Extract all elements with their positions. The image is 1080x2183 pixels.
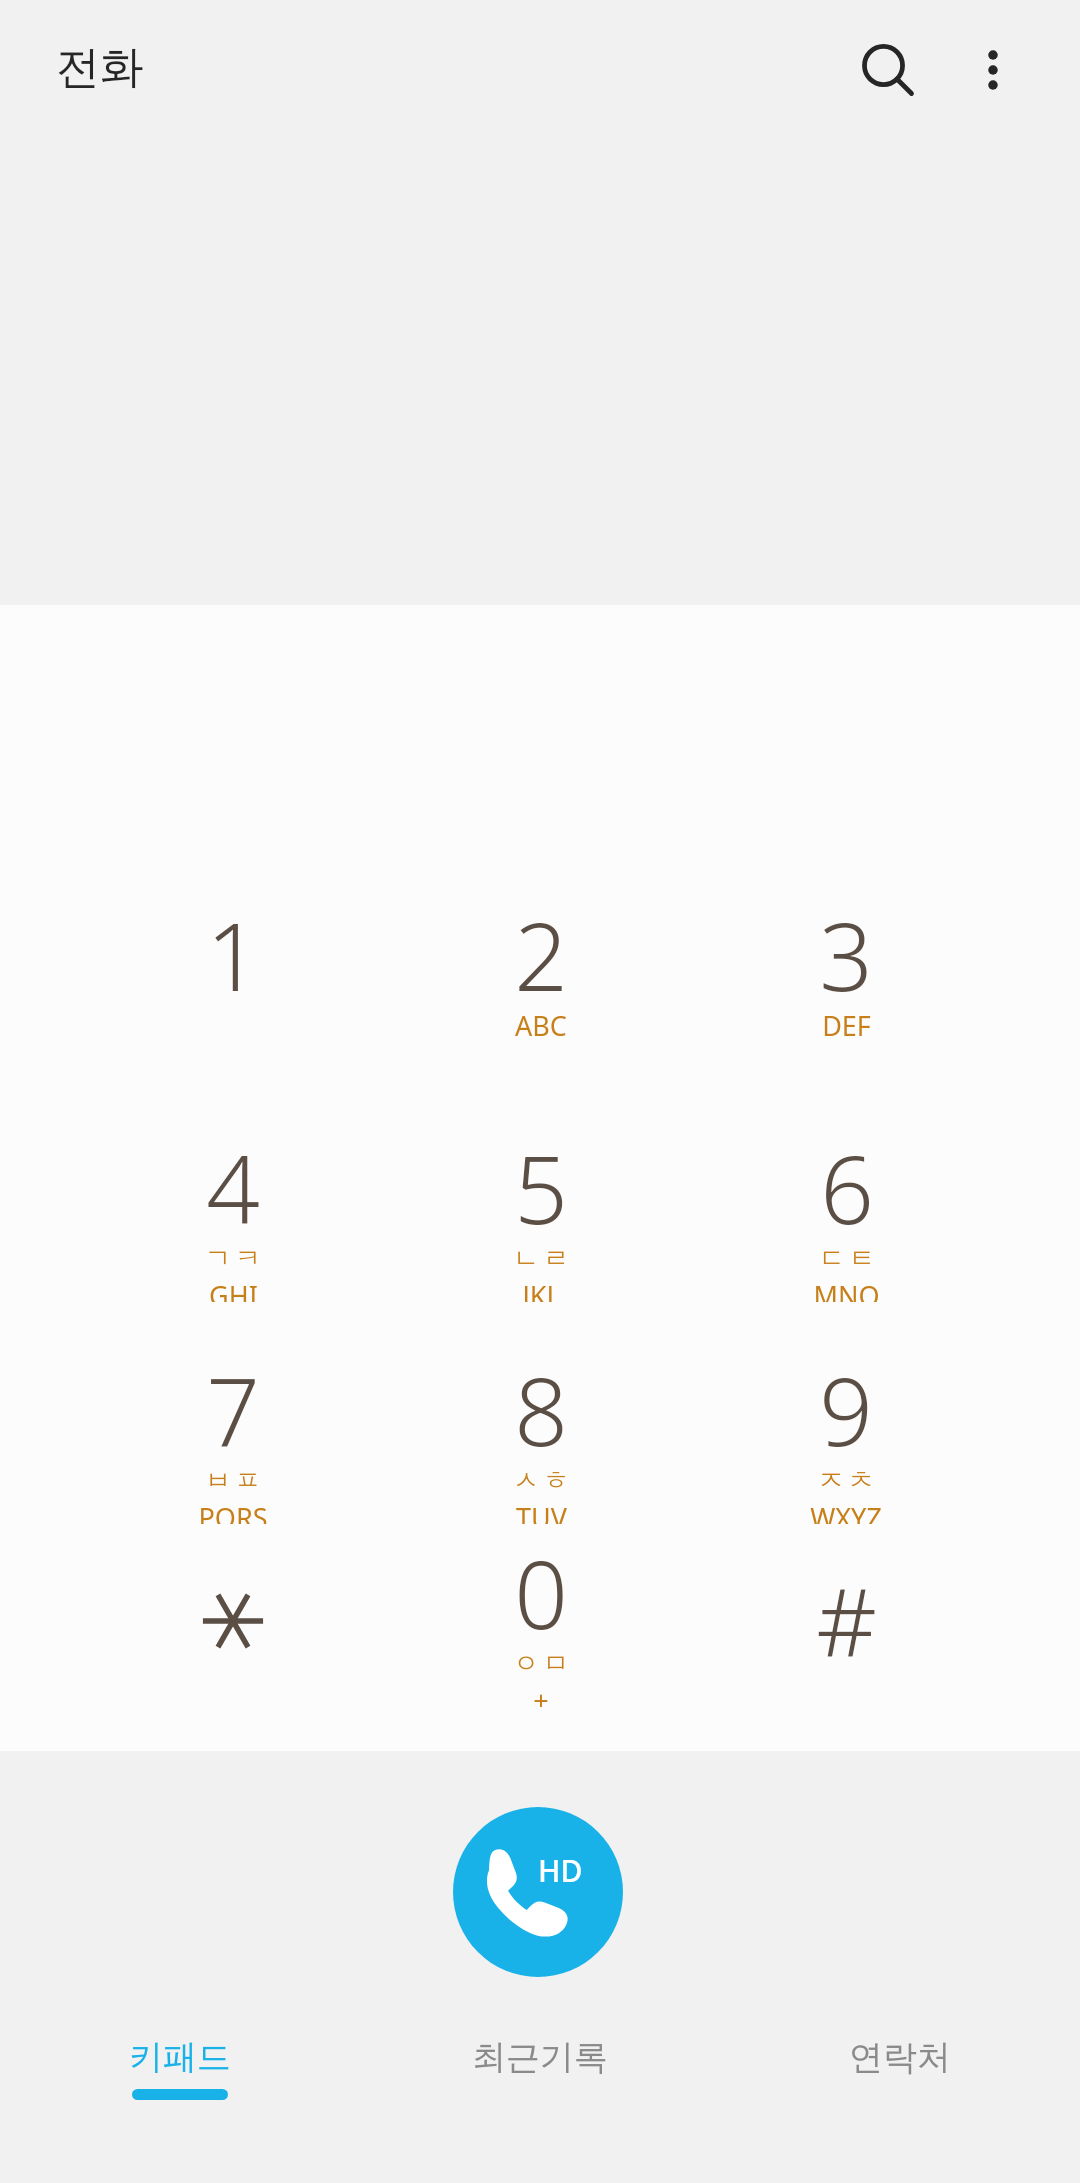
staticText: ㅂㅍ [203, 1464, 263, 1497]
staticText: MNO [813, 1277, 880, 1302]
staticText: ㄱㅋ [203, 1242, 263, 1275]
button[interactable]: Pound [696, 1521, 996, 1721]
button[interactable]: 1 [83, 877, 383, 1077]
staticText: 1 [206, 891, 260, 1019]
staticText: 6 [820, 1124, 874, 1252]
staticText: 5 [514, 1124, 568, 1252]
button[interactable]: Search [832, 14, 944, 126]
button[interactable]: 2 [391, 877, 691, 1077]
button[interactable]: 3 [696, 877, 996, 1077]
button[interactable]: Call [453, 1807, 623, 1977]
staticText: 4 [206, 1124, 260, 1252]
button[interactable]: 연락처 [720, 2008, 1080, 2079]
staticText: TUV [516, 1499, 567, 1524]
staticText: ㄷㅌ [817, 1242, 877, 1275]
staticText: ㅅㅎ [511, 1464, 571, 1497]
staticText: 연락처 [849, 2036, 951, 2079]
button[interactable]: More options [937, 14, 1049, 126]
button[interactable]: 9 [696, 1332, 996, 1532]
staticText: # [816, 1557, 877, 1685]
staticText: 8 [514, 1346, 568, 1474]
staticText: + [533, 1682, 549, 1707]
staticText: GHI [209, 1277, 258, 1302]
button[interactable]: 키패드 [0, 2008, 360, 2100]
staticText: ABC [515, 1007, 567, 1044]
button[interactable]: 4 [83, 1110, 383, 1310]
button[interactable]: 최근기록 [360, 2008, 720, 2079]
button[interactable]: Star [83, 1521, 383, 1721]
staticText: 9 [819, 1346, 873, 1474]
button[interactable]: 0 [391, 1515, 691, 1715]
staticText: 전화 [56, 40, 144, 95]
staticText: DEF [822, 1007, 871, 1044]
staticText: ㅈㅊ [816, 1464, 876, 1497]
staticText: ㅇㅁ [511, 1647, 571, 1680]
staticText: PQRS [198, 1499, 268, 1524]
button[interactable]: 8 [391, 1332, 691, 1532]
button[interactable]: 6 [696, 1110, 996, 1310]
staticText: 키패드 [129, 2036, 231, 2079]
staticText: 최근기록 [472, 2036, 608, 2079]
staticText: WXYZ [810, 1499, 882, 1524]
staticText: 3 [819, 891, 873, 1019]
staticText: JKL [522, 1277, 561, 1302]
staticText: 7 [206, 1346, 260, 1474]
button[interactable]: 7 [83, 1332, 383, 1532]
staticText: 2 [514, 891, 568, 1019]
button[interactable]: 5 [391, 1110, 691, 1310]
staticText: HD [538, 1850, 583, 1891]
staticText: 0 [514, 1529, 568, 1657]
staticText: ㄴㄹ [511, 1242, 571, 1275]
